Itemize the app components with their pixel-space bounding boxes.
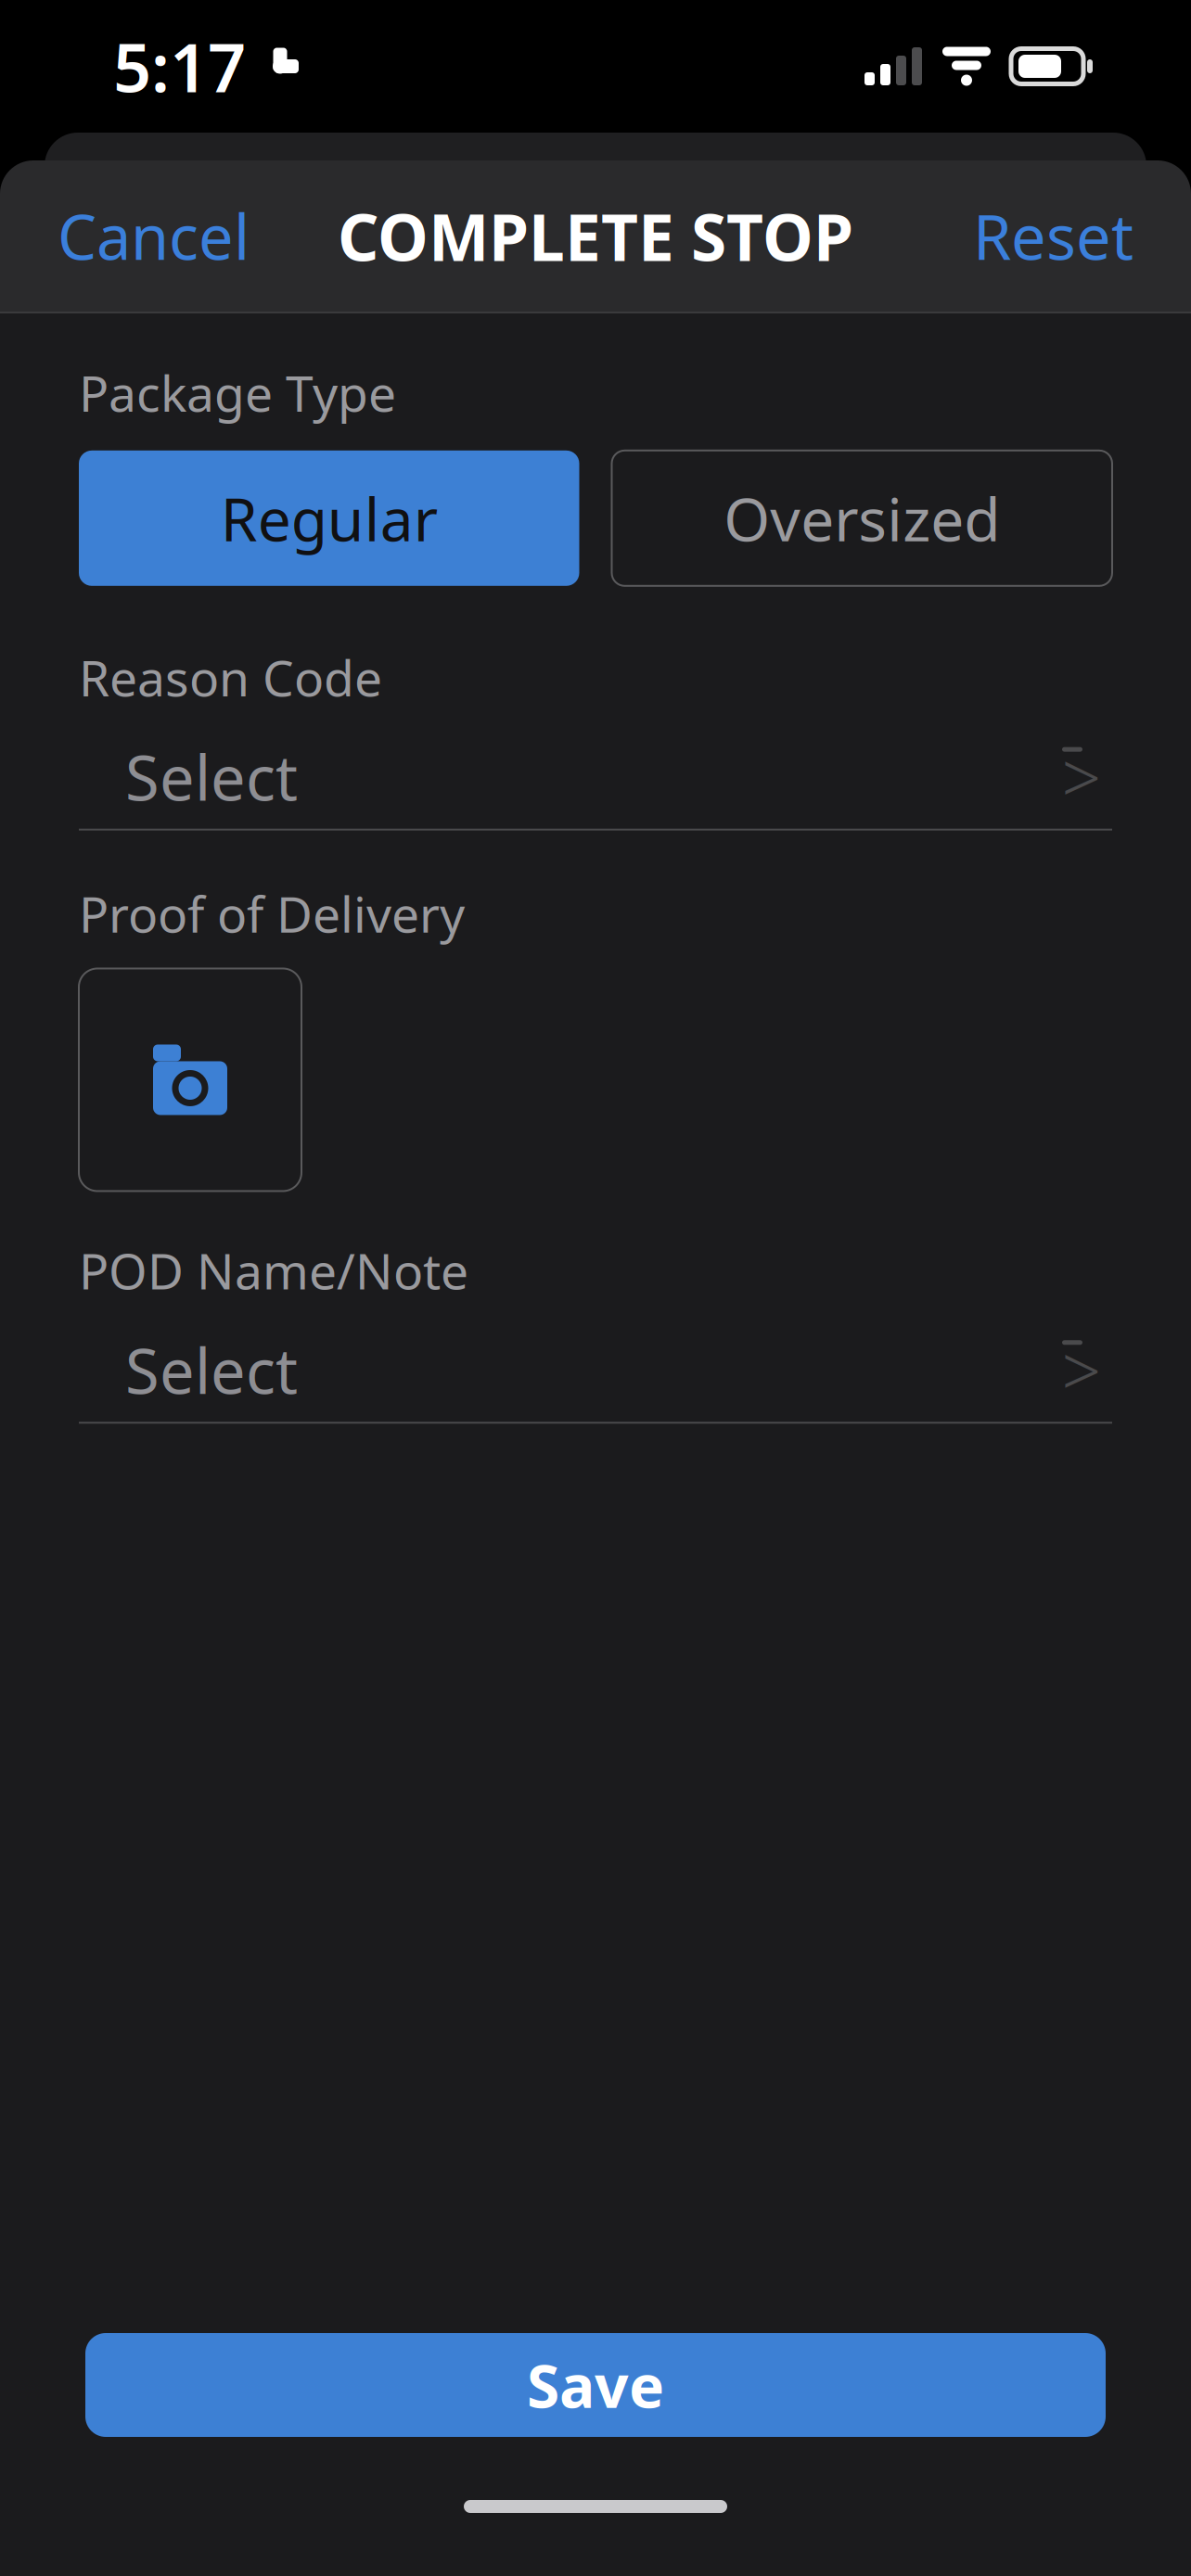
button[interactable]: Oversized [612, 450, 1112, 586]
staticText: Oversized [724, 479, 1000, 558]
staticText: Cancel [58, 195, 250, 277]
button[interactable]: Cancel [35, 176, 272, 296]
button[interactable]: Take photo [79, 969, 301, 1191]
staticText: Select [125, 736, 298, 818]
staticText: Proof of Delivery [79, 881, 465, 946]
staticText: 5:17 [113, 22, 246, 111]
staticText: Package Type [79, 360, 396, 425]
button[interactable]: Save [85, 2333, 1106, 2437]
staticText: POD Name/Note [79, 1237, 468, 1303]
staticText: Reset [973, 195, 1133, 277]
button[interactable]: Select [0, 725, 1191, 830]
staticText: Regular [221, 479, 438, 558]
staticText: > [1062, 1324, 1101, 1416]
button[interactable]: Regular [79, 450, 579, 586]
button[interactable]: Reset [951, 176, 1156, 296]
button[interactable]: Select [0, 1318, 1191, 1424]
staticText: Save [527, 2346, 664, 2424]
staticText: COMPLETE STOP [338, 193, 853, 279]
staticText: Reason Code [79, 644, 382, 710]
staticText: > [1062, 731, 1101, 823]
staticText: Select [125, 1329, 298, 1411]
